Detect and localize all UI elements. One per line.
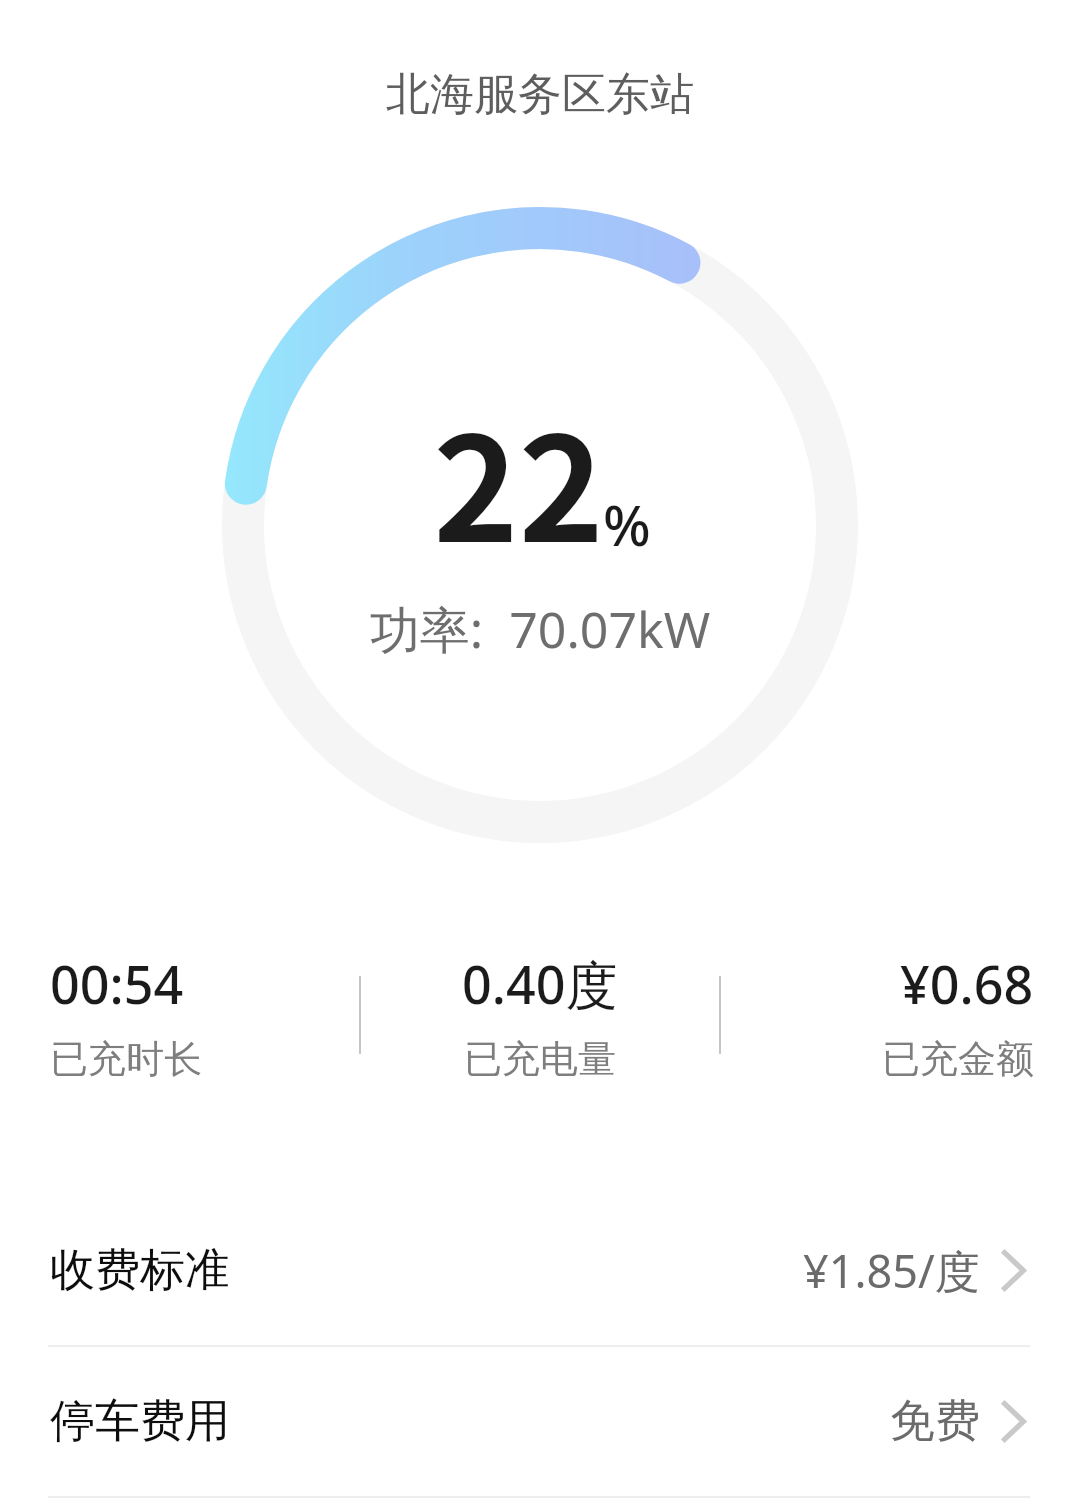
staticText: 功率: 70.07kW: [0, 595, 1080, 663]
staticText: 已充电量: [464, 1035, 616, 1083]
other: Open 停车费用: [1002, 1401, 1026, 1442]
staticText: ¥1.85/度: [803, 1240, 980, 1301]
button[interactable]: 收费标准: [0, 1196, 1080, 1345]
staticText: 免费: [890, 1393, 980, 1450]
staticText: 北海服务区东站: [0, 67, 1080, 122]
staticText: 收费标准: [50, 1242, 230, 1299]
staticText: 停车费用: [50, 1393, 230, 1450]
staticText: 0.40度: [462, 948, 618, 1019]
button[interactable]: 停车费用: [0, 1347, 1080, 1496]
staticText: 00:54: [50, 948, 184, 1019]
staticText: ¥0.68: [900, 948, 1034, 1019]
staticText: 22: [433, 374, 605, 584]
other: Charge level 22 percent: [222, 207, 858, 843]
staticText: %: [603, 486, 651, 562]
staticText: 已充金额: [882, 1035, 1034, 1083]
staticText: 已充时长: [50, 1035, 202, 1083]
other: Open 收费标准: [1002, 1250, 1026, 1291]
